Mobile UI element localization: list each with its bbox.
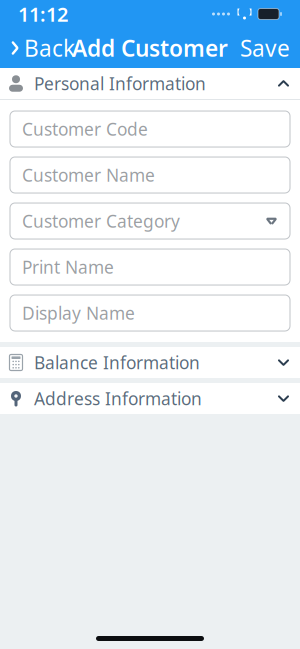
button[interactable]: Customer Code	[10, 111, 290, 147]
button[interactable]: Save	[230, 28, 300, 68]
staticText: Display Name	[22, 301, 135, 324]
button[interactable]: Address Information	[0, 383, 300, 414]
staticText: Personal Information	[34, 72, 206, 95]
staticText: Save	[240, 33, 290, 63]
button[interactable]: Customer Category	[10, 203, 290, 239]
button[interactable]: Print Name	[10, 249, 290, 285]
staticText: Customer Category	[22, 209, 180, 232]
button[interactable]: Personal Information	[0, 68, 300, 99]
staticText: Customer Code	[22, 117, 148, 140]
button[interactable]: Back	[0, 28, 85, 68]
staticText: Address Information	[34, 387, 202, 410]
staticText: 11:12	[18, 1, 68, 27]
staticText: Back	[24, 33, 75, 63]
button[interactable]: Display Name	[10, 295, 290, 331]
button[interactable]: Customer Name	[10, 157, 290, 193]
button[interactable]: Balance Information	[0, 347, 300, 378]
staticText: Balance Information	[34, 351, 200, 374]
staticText: Customer Name	[22, 163, 155, 186]
staticText: Print Name	[22, 255, 114, 278]
staticText: Add Customer	[72, 33, 228, 63]
